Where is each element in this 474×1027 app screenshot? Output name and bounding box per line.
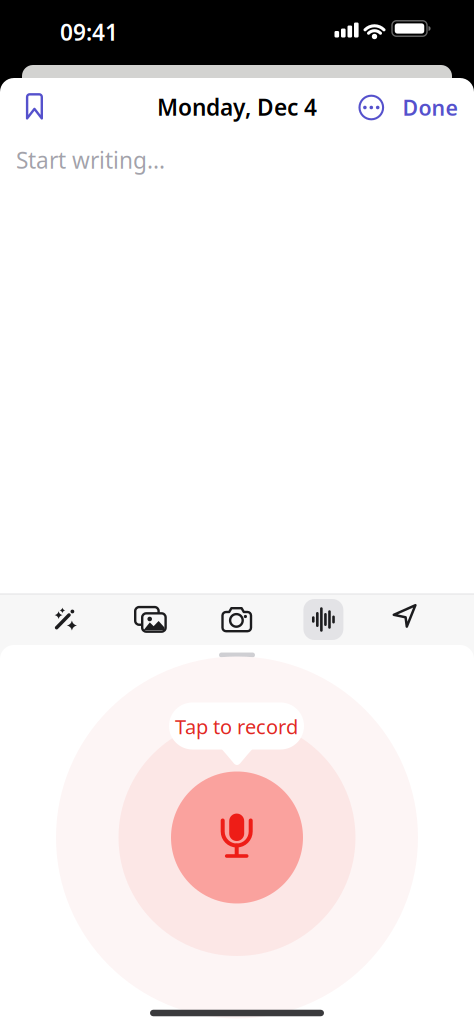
button[interactable]	[349, 85, 393, 129]
button[interactable]: Done	[395, 85, 465, 129]
button[interactable]	[301, 597, 345, 641]
button[interactable]	[44, 598, 88, 642]
button[interactable]	[171, 771, 303, 903]
button[interactable]	[386, 598, 430, 642]
button[interactable]	[12, 84, 56, 128]
staticText: Tap to record	[175, 713, 298, 740]
staticText: Done	[402, 93, 457, 122]
button[interactable]	[128, 598, 172, 642]
staticText: Monday, Dec 4	[157, 92, 317, 122]
staticText: Start writing...	[16, 145, 165, 175]
button[interactable]	[215, 598, 259, 642]
staticText: 09:41	[60, 17, 118, 47]
